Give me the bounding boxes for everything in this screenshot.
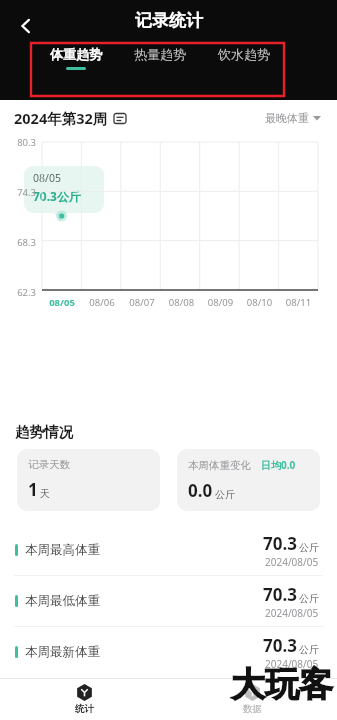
- staticText: 08/11: [279, 296, 318, 309]
- staticText: 08/07: [122, 296, 162, 309]
- staticText: 08/09: [201, 296, 240, 309]
- staticText: 2024/08/05: [265, 555, 319, 569]
- staticText: 1: [28, 478, 38, 501]
- staticText: 80.3: [6, 136, 36, 149]
- staticText: 体重趋势: [50, 46, 102, 62]
- staticText: 2024/08/05: [265, 606, 319, 620]
- staticText: 70.3: [263, 634, 297, 657]
- staticText: 记录天数: [28, 458, 70, 471]
- staticText: 记录统计: [135, 10, 203, 31]
- staticText: 08/06: [82, 296, 122, 309]
- staticText: 08/05: [42, 296, 82, 309]
- staticText: 公斤: [299, 643, 319, 656]
- staticText: 08/10: [240, 296, 279, 309]
- button[interactable]: 本周最高体重: [0, 525, 337, 576]
- staticText: 日均0.0: [261, 458, 296, 472]
- button[interactable]: 饮水趋势: [202, 46, 286, 67]
- staticText: 大玩客: [231, 663, 333, 706]
- staticText: 公斤: [299, 592, 319, 605]
- staticText: 本周最低体重: [25, 593, 100, 609]
- staticText: 饮水趋势: [218, 46, 270, 62]
- button[interactable]: 2024年第32周: [14, 108, 127, 128]
- staticText: 本周最高体重: [25, 542, 100, 558]
- staticText: 2024年第32周: [14, 108, 108, 128]
- staticText: 热量趋势: [134, 46, 186, 62]
- button[interactable]: 本周最新体重: [0, 627, 337, 677]
- staticText: 天: [40, 487, 50, 500]
- button[interactable]: 数据: [168, 679, 337, 720]
- button[interactable]: 记录天数: [17, 449, 160, 511]
- staticText: 62.3: [6, 286, 36, 299]
- staticText: 公斤: [215, 488, 235, 501]
- staticText: 趋势情况: [15, 423, 73, 441]
- staticText: 70.3: [263, 532, 297, 555]
- staticText: 公斤: [299, 541, 319, 554]
- staticText: 2024/08/05: [265, 657, 319, 671]
- staticText: 74.3: [6, 186, 36, 199]
- button[interactable]: 统计: [0, 679, 168, 720]
- staticText: 08/08: [162, 296, 201, 309]
- staticText: 数据: [243, 703, 262, 715]
- button[interactable]: 本周最低体重: [0, 576, 337, 627]
- staticText: 08/05: [33, 171, 61, 185]
- button[interactable]: Back: [8, 8, 44, 44]
- staticText: 0.0: [188, 479, 213, 502]
- staticText: 70.3公斤: [33, 188, 81, 204]
- button[interactable]: 最晚体重: [265, 111, 321, 125]
- button[interactable]: 本周体重变化: [177, 449, 320, 511]
- staticText: 本周体重变化: [188, 459, 251, 472]
- staticText: 最晚体重: [265, 111, 309, 125]
- button[interactable]: 体重趋势: [34, 46, 118, 70]
- staticText: 本周最新体重: [25, 644, 100, 660]
- button[interactable]: 热量趋势: [118, 46, 202, 67]
- staticText: 70.3: [263, 583, 297, 606]
- staticText: 68.3: [6, 236, 36, 249]
- staticText: 统计: [75, 703, 94, 715]
